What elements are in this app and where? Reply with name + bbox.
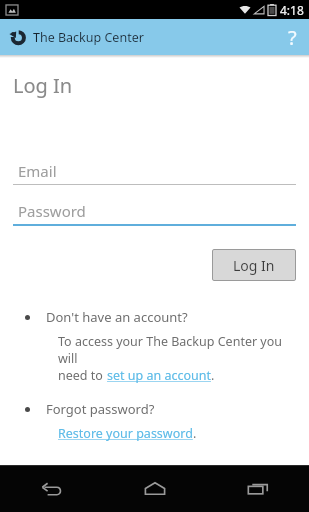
staticText: Log In (233, 256, 275, 275)
staticText: Restore your password (58, 425, 193, 442)
button[interactable]: Back (0, 465, 103, 512)
staticText: . (193, 425, 197, 442)
button[interactable]: Recent apps (206, 465, 309, 512)
staticText: The Backup Center (33, 29, 144, 46)
button[interactable]: set up an account (107, 367, 211, 384)
staticText: ? (288, 24, 297, 51)
button[interactable]: Help (275, 19, 309, 55)
staticText: set up an account (107, 367, 211, 384)
button[interactable]: Log In (212, 249, 296, 281)
staticText: need to (58, 367, 107, 384)
staticText: Don't have an account? (46, 308, 188, 326)
staticText: Email (18, 161, 57, 181)
button[interactable]: Restore your password (58, 425, 193, 442)
staticText: Log In (13, 72, 73, 99)
staticText: To access your The Backup Center you wil… (58, 333, 295, 367)
staticText: Password (18, 201, 86, 221)
button[interactable]: Email (13, 158, 296, 185)
staticText: Forgot password? (46, 400, 155, 418)
button[interactable]: Home (103, 465, 206, 512)
button[interactable]: Password (13, 198, 296, 226)
staticText: . (211, 367, 215, 384)
staticText: 4:18 (280, 2, 304, 18)
